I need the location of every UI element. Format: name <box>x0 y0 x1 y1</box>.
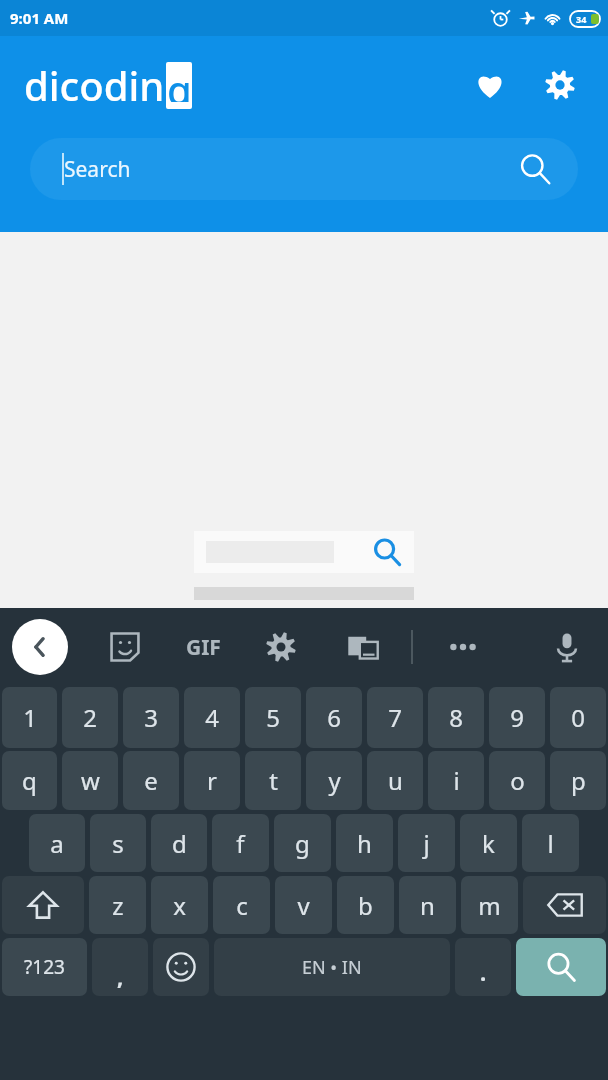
button[interactable]: GIF <box>186 633 221 662</box>
button[interactable]: v <box>275 876 332 934</box>
button[interactable]: 6 <box>306 687 362 748</box>
button[interactable]: w <box>62 751 118 810</box>
staticText: p <box>571 764 586 797</box>
staticText: r <box>207 764 217 797</box>
button[interactable]: c <box>213 876 270 934</box>
button[interactable]: Back <box>12 619 68 675</box>
staticText: i <box>453 764 460 797</box>
staticText: 9 <box>510 701 524 734</box>
button[interactable]: b <box>337 876 394 934</box>
button[interactable]: Keyboard settings <box>259 625 303 669</box>
staticText: d <box>172 827 187 860</box>
button[interactable]: Backspace <box>523 876 606 934</box>
button[interactable]: 1 <box>2 687 57 748</box>
staticText: 34 <box>576 13 587 25</box>
button[interactable]: . <box>455 938 511 996</box>
button[interactable]: i <box>428 751 484 810</box>
staticText: GIF <box>186 633 221 662</box>
staticText: x <box>173 889 186 922</box>
staticText: 9:01 AM <box>10 8 69 28</box>
button[interactable]: x <box>151 876 208 934</box>
staticText: 4 <box>205 701 219 734</box>
staticText: c <box>236 889 248 922</box>
staticText: 6 <box>327 701 341 734</box>
button[interactable]: Search <box>516 938 606 996</box>
button[interactable]: ?123 <box>2 938 87 996</box>
staticText: w <box>81 764 100 797</box>
button[interactable]: Search <box>518 152 552 186</box>
button[interactable]: More options <box>441 625 485 669</box>
button[interactable]: j <box>398 814 455 872</box>
button[interactable]: Favorites <box>466 61 514 109</box>
button[interactable]: r <box>184 751 240 810</box>
button[interactable]: f <box>212 814 269 872</box>
staticText: l <box>547 827 554 860</box>
button[interactable]: o <box>489 751 545 810</box>
button[interactable]: l <box>522 814 579 872</box>
button[interactable]: Voice input <box>544 624 590 670</box>
button[interactable]: Search <box>30 138 578 200</box>
staticText: a <box>50 827 64 860</box>
staticText: 5 <box>266 701 280 734</box>
staticText: o <box>510 764 525 797</box>
button[interactable] <box>194 531 414 573</box>
button[interactable]: 7 <box>367 687 423 748</box>
staticText: 3 <box>144 701 158 734</box>
staticText: q <box>22 764 37 797</box>
button[interactable]: d <box>151 814 207 872</box>
button[interactable]: u <box>367 751 423 810</box>
staticText: 2 <box>83 701 97 734</box>
button[interactable]: 9 <box>489 687 545 748</box>
button[interactable]: z <box>89 876 146 934</box>
button[interactable]: s <box>90 814 146 872</box>
button[interactable]: n <box>399 876 456 934</box>
staticText: . <box>480 957 487 987</box>
button[interactable]: a <box>29 814 85 872</box>
button[interactable]: Settings <box>536 61 584 109</box>
staticText: s <box>112 827 124 860</box>
staticText: 8 <box>449 701 463 734</box>
staticText: b <box>358 889 373 922</box>
staticText: 1 <box>23 701 37 734</box>
button[interactable]: 5 <box>245 687 301 748</box>
staticText: m <box>478 889 501 922</box>
staticText: g <box>295 827 310 860</box>
staticText: dicodin <box>24 58 165 112</box>
button[interactable]: Emoji <box>153 938 209 996</box>
button[interactable]: y <box>306 751 362 810</box>
button[interactable]: k <box>460 814 517 872</box>
staticText: u <box>388 764 403 797</box>
button[interactable]: EN • IN <box>214 938 450 996</box>
button[interactable]: 2 <box>62 687 118 748</box>
button[interactable]: 8 <box>428 687 484 748</box>
button[interactable]: 3 <box>123 687 179 748</box>
button[interactable]: q <box>2 751 57 810</box>
staticText: 0 <box>571 701 585 734</box>
button[interactable]: m <box>461 876 518 934</box>
staticText: j <box>423 827 430 860</box>
button[interactable]: , <box>92 938 148 996</box>
staticText: Search <box>64 155 131 184</box>
staticText: , <box>117 961 124 991</box>
button[interactable]: 4 <box>184 687 240 748</box>
staticText: 7 <box>388 701 402 734</box>
button[interactable]: g <box>274 814 331 872</box>
staticText: v <box>297 889 310 922</box>
button[interactable]: Stickers <box>102 624 148 670</box>
staticText: k <box>482 827 495 860</box>
staticText: ?123 <box>24 954 65 980</box>
staticText: y <box>328 764 341 797</box>
button[interactable]: t <box>245 751 301 810</box>
button[interactable]: 0 <box>550 687 606 748</box>
staticText: f <box>236 827 245 860</box>
staticText: e <box>144 764 158 797</box>
button[interactable]: p <box>550 751 606 810</box>
staticText: EN • IN <box>302 955 362 980</box>
button[interactable]: Shift <box>2 876 84 934</box>
button[interactable]: e <box>123 751 179 810</box>
button[interactable]: Translate <box>341 625 385 669</box>
staticText: t <box>269 764 278 797</box>
staticText: z <box>112 889 124 922</box>
staticText: n <box>420 889 435 922</box>
button[interactable]: h <box>336 814 393 872</box>
